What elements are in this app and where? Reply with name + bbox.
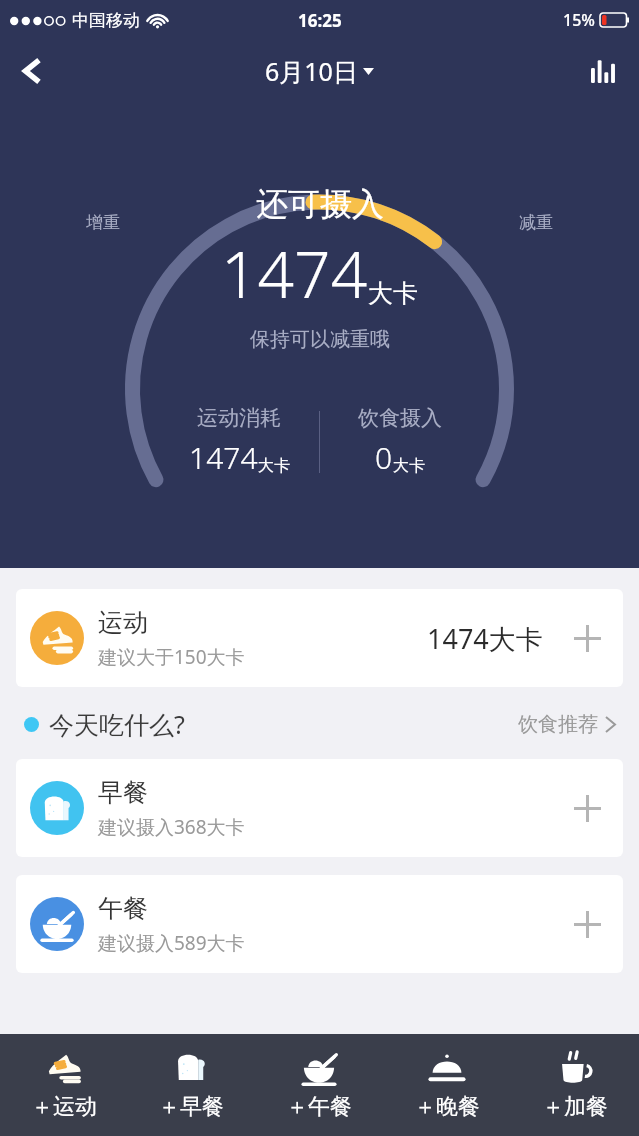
staticText: 大卡	[258, 456, 290, 476]
staticText: 1474	[189, 437, 258, 478]
button[interactable]: Add 运动	[565, 616, 609, 660]
staticText: 6月10日	[265, 54, 358, 88]
staticText: 还可摄入	[256, 184, 384, 224]
staticText: 建议摄入368大卡	[98, 814, 245, 840]
staticText: ＋午餐	[286, 1093, 352, 1121]
button[interactable]: Add 早餐	[565, 786, 609, 830]
button[interactable]: 运动	[16, 589, 623, 687]
staticText: 大卡	[393, 456, 425, 476]
staticText: 保持可以减重哦	[250, 327, 390, 352]
staticText: ＋运动	[31, 1093, 97, 1121]
staticText: 1474	[221, 230, 368, 317]
staticText: 建议大于150大卡	[98, 644, 245, 670]
button[interactable]: Statistics	[579, 45, 631, 97]
staticText: 大卡	[368, 278, 418, 309]
button[interactable]: ＋加餐	[511, 1034, 639, 1136]
staticText: 运动	[98, 607, 148, 638]
staticText: 中国移动	[72, 10, 140, 31]
staticText: 0	[375, 437, 393, 478]
button[interactable]: ＋早餐	[127, 1034, 255, 1136]
button[interactable]: Back	[6, 45, 58, 97]
staticText: 午餐	[98, 893, 148, 924]
staticText: 减重	[519, 212, 553, 233]
button[interactable]: Add 午餐	[565, 902, 609, 946]
button[interactable]: ＋午餐	[255, 1034, 383, 1136]
button[interactable]: 早餐	[16, 759, 623, 857]
button[interactable]: ＋晚餐	[383, 1034, 511, 1136]
button[interactable]: 午餐	[16, 875, 623, 973]
staticText: 饮食摄入	[358, 405, 442, 431]
staticText: 16:25	[298, 9, 342, 32]
staticText: 运动消耗	[197, 405, 281, 431]
button[interactable]: 今天吃什么?	[0, 701, 639, 747]
staticText: ＋加餐	[542, 1093, 608, 1121]
staticText: 今天吃什么?	[49, 707, 185, 741]
staticText: 增重	[86, 212, 120, 233]
staticText: 15%	[563, 9, 595, 31]
staticText: 饮食推荐	[518, 712, 598, 737]
staticText: 早餐	[98, 777, 148, 808]
staticText: ＋早餐	[158, 1093, 224, 1121]
staticText: 建议摄入589大卡	[98, 930, 245, 956]
button[interactable]: 6月10日	[265, 54, 374, 88]
button[interactable]: ＋运动	[0, 1034, 127, 1136]
staticText: 1474大卡	[427, 620, 543, 657]
staticText: ＋晚餐	[414, 1093, 480, 1121]
